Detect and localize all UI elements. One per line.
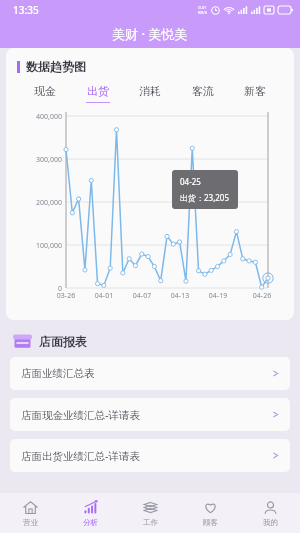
staticText: 13:35 bbox=[13, 3, 39, 17]
other: 营业 bbox=[23, 500, 38, 515]
button[interactable]: 工作 bbox=[120, 493, 180, 533]
staticText: 出货 bbox=[87, 84, 109, 98]
button[interactable]: 现金 bbox=[30, 83, 60, 104]
staticText: 顾客 bbox=[203, 518, 218, 527]
staticText: 出货：23,205 bbox=[180, 192, 230, 203]
staticText: 04-07 bbox=[128, 291, 156, 301]
staticText: 200,000 bbox=[6, 198, 62, 208]
staticText: 0 bbox=[6, 284, 62, 294]
staticText: 04-26 bbox=[248, 291, 276, 301]
staticText: 营业 bbox=[23, 518, 38, 527]
staticText: 300,000 bbox=[6, 155, 62, 165]
other: 工作 bbox=[143, 500, 158, 515]
other: 分析 bbox=[83, 500, 98, 515]
staticText: 现金 bbox=[34, 84, 56, 98]
staticText: 04-19 bbox=[204, 291, 232, 301]
staticText: 新客 bbox=[244, 84, 266, 98]
staticText: 400,000 bbox=[6, 112, 62, 122]
button[interactable]: 我的 bbox=[240, 493, 300, 533]
other: 顾客 bbox=[203, 500, 218, 515]
button[interactable]: 客流 bbox=[188, 83, 218, 104]
staticText: 分析 bbox=[83, 518, 98, 527]
other: 我的 bbox=[263, 500, 278, 515]
button[interactable]: 店面业绩汇总表 bbox=[10, 357, 290, 390]
staticText: 工作 bbox=[143, 518, 158, 527]
staticText: 店面现金业绩汇总-详请表 bbox=[21, 408, 272, 422]
staticText: 店面报表 bbox=[39, 334, 87, 349]
staticText: 04-25 bbox=[180, 176, 201, 187]
staticText: 店面业绩汇总表 bbox=[21, 367, 272, 380]
button[interactable]: 店面现金业绩汇总-详请表 bbox=[10, 398, 290, 431]
button[interactable]: 营业 bbox=[0, 493, 60, 533]
button[interactable]: 新客 bbox=[240, 83, 270, 104]
staticText: 店面出货业绩汇总-详请表 bbox=[21, 449, 272, 463]
staticText: 美财 · 美悦美 bbox=[112, 25, 188, 43]
staticText: 03-26 bbox=[52, 291, 80, 301]
staticText: 客流 bbox=[192, 84, 214, 98]
staticText: 0.01 KB/S bbox=[198, 5, 207, 15]
button[interactable]: 出货 bbox=[83, 83, 113, 104]
staticText: 04-13 bbox=[166, 291, 194, 301]
button[interactable]: 顾客 bbox=[180, 493, 240, 533]
button[interactable]: 店面出货业绩汇总-详请表 bbox=[10, 439, 290, 472]
staticText: 04-01 bbox=[90, 291, 118, 301]
staticText: 消耗 bbox=[139, 84, 161, 98]
staticText: 我的 bbox=[263, 518, 278, 527]
staticText: 数据趋势图 bbox=[26, 59, 86, 74]
button[interactable]: 消耗 bbox=[135, 83, 165, 104]
button[interactable]: 分析 bbox=[60, 493, 120, 533]
staticText: 100,000 bbox=[6, 241, 62, 251]
